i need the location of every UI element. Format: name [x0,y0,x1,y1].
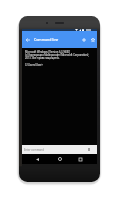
staticText: Microsoft Windows [Version 6.3.9600] [25,50,70,53]
staticText: C:\Users\User> [25,63,44,66]
staticText: Command line [34,37,59,42]
button[interactable]: Favorite [88,31,97,48]
staticText: Enter command [24,148,44,152]
staticText: (c) Корпорация Майкрософт (Microsoft Cor… [25,53,90,56]
staticText: 2013. Все права защищены. [25,56,60,59]
button[interactable]: Home [53,154,66,164]
button[interactable]: Send command [83,145,97,154]
button[interactable]: Add [79,31,88,48]
button[interactable]: Recent apps [74,154,87,164]
button[interactable]: Back [31,154,44,164]
button[interactable]: Enter command [24,145,83,154]
button[interactable]: Navigate up [22,31,34,48]
